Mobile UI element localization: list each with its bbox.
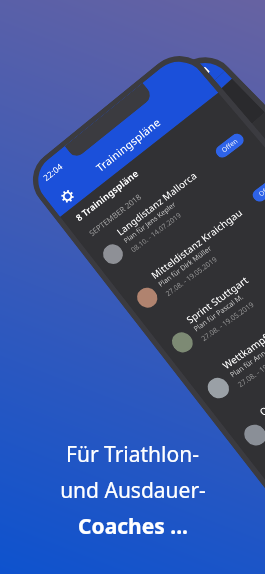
staticText: Erstellung [199, 101, 241, 140]
staticText: Plan für Jens Kepler [122, 199, 178, 245]
staticText: 22:04 [41, 160, 65, 184]
staticText: Plan für Anna K. [228, 341, 265, 379]
staticText: Plan für Pascal M. [191, 291, 246, 333]
staticText: Offen [257, 181, 265, 198]
staticText: SEPTEMBER 2018 [87, 191, 143, 238]
staticText: Offen [220, 137, 240, 154]
staticText: Langdistanz Mallorca [114, 168, 199, 238]
button[interactable]: Wettkampf Köln [187, 259, 265, 426]
staticText: Olympisch Roth [256, 365, 265, 418]
staticText: Mitteldistanz Kraichgau [148, 205, 245, 281]
button[interactable]: Langdistanz Mallorca [83, 123, 265, 290]
button[interactable]: Olympisch Roth [223, 306, 265, 473]
button[interactable]: Offen [213, 131, 246, 160]
staticText: Sprint Stuttgart [183, 272, 251, 326]
button[interactable]: Einstellungen [55, 184, 80, 208]
staticText: 8 Trainingspläne [73, 166, 141, 223]
button[interactable]: Mitteldistanz Kraichgau [117, 167, 265, 334]
staticText: Trainingspläne [93, 114, 164, 175]
button[interactable]: Offen [250, 175, 265, 204]
staticText: Wettkampf Köln [219, 317, 265, 371]
staticText: Für Triathlon- [66, 440, 199, 469]
button[interactable]: Erstellung [186, 101, 241, 152]
staticText: 27.08. - 19.05.2019 [199, 299, 257, 343]
staticText: 27.08. - 19.05.2019 [163, 254, 220, 298]
staticText: und Ausdauer- [60, 476, 206, 505]
staticText: 08.10. - 14.07.2019 [129, 210, 184, 254]
staticText: Plan für Dirk Müller [156, 243, 214, 289]
staticText: Coaches ... [78, 512, 188, 541]
button[interactable]: Sprint Stuttgart [151, 212, 265, 379]
staticText: 27.08. - 19.05.2019 [235, 345, 265, 389]
